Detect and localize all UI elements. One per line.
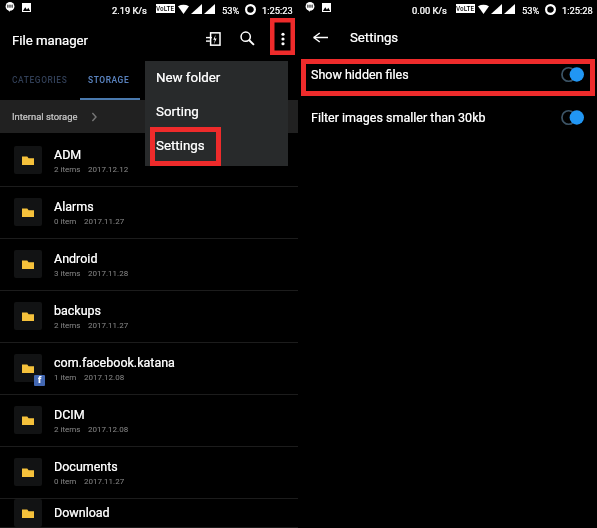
staticText: 2017.11.27: [88, 321, 129, 330]
button[interactable]: Android: [0, 239, 298, 291]
staticText: Settings: [350, 30, 399, 45]
button[interactable]: Alarms: [0, 187, 298, 239]
staticText: Documents: [54, 459, 118, 474]
staticText: Download: [54, 505, 110, 520]
staticText: 2017.11.27: [84, 477, 125, 486]
staticText: VoLTE: [456, 5, 475, 13]
staticText: 1 item: [54, 373, 77, 382]
staticText: 53%: [522, 5, 540, 16]
staticText: DCIM: [54, 407, 85, 422]
staticText: File manager: [12, 33, 89, 48]
button[interactable]: f: [0, 343, 298, 395]
staticText: Android: [54, 251, 98, 266]
staticText: 2 items: [54, 425, 81, 434]
button[interactable]: Back: [306, 23, 334, 51]
button[interactable]: Documents: [0, 447, 298, 499]
staticText: backups: [54, 303, 102, 318]
staticText: STORAGE: [88, 75, 130, 85]
staticText: Settings: [156, 138, 205, 154]
button[interactable]: ADM: [0, 135, 298, 187]
staticText: Internal storage: [12, 111, 78, 122]
staticText: Show hidden files: [311, 67, 409, 82]
staticText: ADM: [54, 147, 82, 162]
staticText: 1:25:23: [262, 5, 293, 16]
staticText: VoLTE: [156, 5, 175, 13]
staticText: com.facebook.katana: [54, 355, 175, 370]
button[interactable]: Search: [233, 24, 262, 53]
button[interactable]: More options: [268, 24, 297, 53]
staticText: 2.19 K/s: [112, 5, 147, 16]
staticText: 3 items: [54, 269, 81, 278]
button[interactable]: Filter images smaller than 30kb: [300, 96, 597, 139]
staticText: Alarms: [54, 199, 94, 214]
staticText: 2017.11.28: [88, 269, 129, 278]
staticText: 0.00 K/s: [412, 5, 447, 16]
staticText: 2017.12.08: [88, 425, 129, 434]
staticText: f: [38, 375, 42, 386]
staticText: 2017.12.12: [88, 165, 129, 174]
button[interactable]: Transfer to device: [198, 24, 227, 53]
button[interactable]: Settings: [145, 128, 288, 163]
staticText: 0 item: [54, 477, 77, 486]
staticText: CATEGORIES: [12, 75, 68, 85]
staticText: 2 items: [54, 165, 81, 174]
button[interactable]: CATEGORIES: [9, 59, 71, 100]
staticText: New folder: [156, 70, 221, 86]
button[interactable]: Sorting: [145, 94, 288, 129]
button[interactable]: DCIM: [0, 395, 298, 447]
staticText: 0 item: [54, 217, 77, 226]
staticText: Sorting: [156, 104, 199, 120]
button[interactable]: New folder: [145, 60, 288, 95]
staticText: 2 items: [54, 321, 81, 330]
staticText: 53%: [222, 5, 240, 16]
button[interactable]: Download: [0, 499, 298, 528]
button[interactable]: Show hidden files: [300, 53, 597, 96]
staticText: Filter images smaller than 30kb: [311, 110, 486, 125]
staticText: 1:25:28: [562, 5, 593, 16]
button[interactable]: backups: [0, 291, 298, 343]
button[interactable]: STORAGE: [79, 59, 139, 100]
staticText: 2017.12.08: [84, 373, 125, 382]
staticText: 2017.11.27: [84, 217, 125, 226]
